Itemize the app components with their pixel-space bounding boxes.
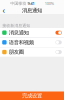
button[interactable]: 朋友圈	[0, 47, 64, 57]
staticText: 消息通知	[22, 7, 42, 14]
staticText: 100%	[45, 1, 54, 6]
staticText: 完成设置	[22, 92, 42, 99]
button[interactable]: 语音和视频	[0, 38, 64, 47]
staticText: 中国移动	[10, 1, 26, 6]
staticText: ‹	[2, 5, 4, 16]
staticText: 语音和视频	[9, 39, 34, 46]
staticText: 接收新消息通知	[2, 23, 30, 28]
button[interactable]: 完成设置	[0, 91, 64, 100]
button[interactable]: 消息通知	[0, 28, 64, 37]
staticText: 9:41	[27, 1, 34, 6]
staticText: 朋友圈	[9, 49, 24, 55]
staticText: 消息通知	[9, 29, 29, 36]
button[interactable]: Back	[0, 7, 7, 14]
